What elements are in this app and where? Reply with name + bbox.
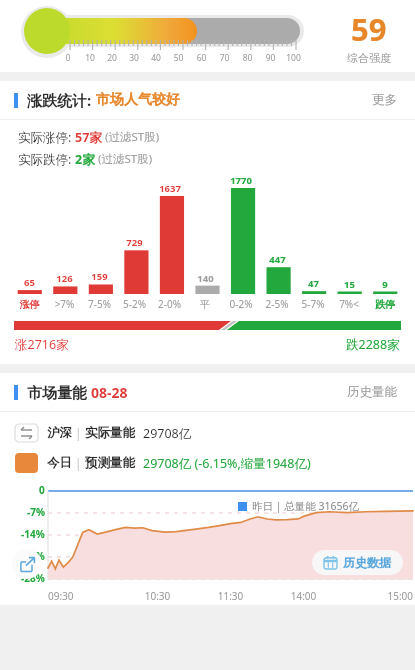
staticText: 7-5%: [82, 297, 117, 311]
staticText: 实际涨停:: [18, 129, 75, 146]
staticText: 140: [197, 272, 214, 285]
staticText: 实际量能: [85, 425, 135, 441]
staticText: 20: [101, 52, 123, 64]
staticText: 5-7%: [295, 297, 331, 311]
staticText: 14:00: [267, 589, 340, 603]
staticText: 0: [39, 483, 45, 497]
staticText: 15:00: [340, 589, 413, 603]
staticText: 9: [382, 278, 388, 291]
button[interactable]: Share: [12, 549, 42, 579]
staticText: (过滤ST股): [102, 129, 160, 145]
staticText: 100: [282, 52, 305, 64]
button[interactable]: 今日: [0, 453, 415, 473]
staticText: (过滤ST股): [95, 151, 153, 167]
staticText: 10:30: [121, 589, 194, 603]
staticText: 29708亿: [143, 425, 192, 442]
staticText: |: [72, 455, 85, 471]
staticText: 跌2288家: [346, 336, 400, 353]
staticText: 30: [123, 52, 145, 64]
staticText: 15: [344, 278, 355, 291]
staticText: 159: [91, 270, 108, 283]
staticText: 市场量能: [27, 382, 91, 402]
button[interactable]: 历史数据: [312, 550, 403, 575]
staticText: 47: [308, 277, 319, 290]
staticText: 0: [57, 52, 79, 64]
staticText: >7%: [47, 297, 82, 311]
staticText: |: [72, 425, 85, 441]
staticText: -14%: [21, 527, 45, 541]
staticText: 沪深: [47, 425, 72, 441]
staticText: 29708亿 (-6.15%,缩量1948亿): [143, 455, 311, 472]
button[interactable]: More: [368, 88, 401, 112]
staticText: -21%: [21, 549, 45, 563]
staticText: 08-28: [91, 383, 128, 402]
staticText: 跌停: [367, 298, 403, 311]
staticText: 90: [259, 52, 282, 64]
staticText: 11:30: [194, 589, 267, 603]
staticText: 预测量能: [85, 455, 135, 471]
staticText: 综合强度: [347, 51, 391, 65]
button[interactable]: 沪深: [0, 424, 415, 442]
staticText: -28%: [21, 571, 45, 585]
staticText: 7%<: [331, 297, 367, 311]
button[interactable]: History volume: [343, 380, 401, 404]
staticText: 涨2716家: [15, 336, 69, 353]
staticText: 10: [79, 52, 101, 64]
staticText: 59: [351, 8, 387, 50]
staticText: 447: [269, 253, 286, 266]
staticText: 2-5%: [259, 297, 295, 311]
staticText: 涨停: [12, 298, 47, 311]
staticText: 更多: [372, 92, 397, 108]
staticText: 0-2%: [223, 297, 259, 311]
staticText: 历史量能: [347, 384, 397, 400]
staticText: 1770: [230, 174, 252, 187]
staticText: 60: [190, 52, 213, 64]
staticText: 2家: [75, 151, 95, 168]
staticText: -7%: [27, 505, 45, 519]
staticText: 实际跌停:: [18, 151, 75, 168]
staticText: 涨跌统计:: [27, 90, 96, 110]
staticText: 729: [126, 236, 143, 249]
staticText: 65: [24, 276, 35, 289]
staticText: 5-2%: [117, 297, 152, 311]
staticText: 09:30: [48, 589, 121, 603]
staticText: 80: [236, 52, 259, 64]
staticText: 70: [213, 52, 236, 64]
staticText: 2-0%: [152, 297, 187, 311]
staticText: 市场人气较好: [96, 91, 180, 109]
staticText: 50: [167, 52, 190, 64]
staticText: 57家: [75, 129, 102, 146]
staticText: 今日: [47, 455, 72, 471]
staticText: 昨日 | 总量能 31656亿: [252, 499, 360, 513]
staticText: 平: [187, 298, 223, 311]
staticText: 历史数据: [343, 555, 391, 570]
staticText: 1637: [159, 182, 181, 195]
staticText: 40: [145, 52, 167, 64]
staticText: 126: [56, 272, 73, 285]
